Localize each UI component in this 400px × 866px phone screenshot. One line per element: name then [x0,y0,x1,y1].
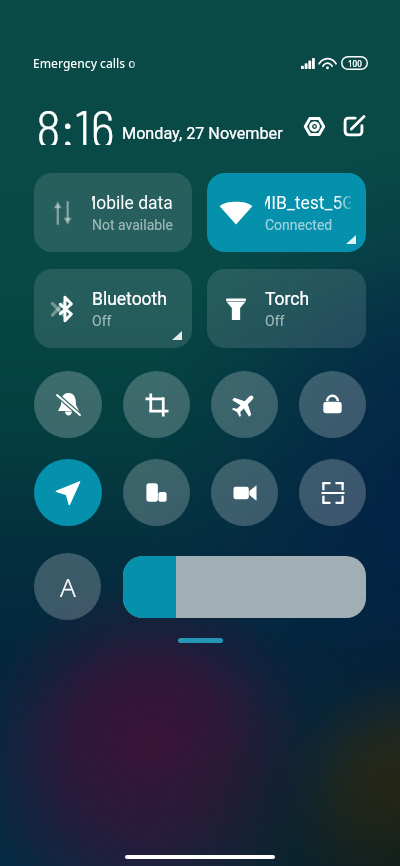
button[interactable]: Screenshot [123,371,190,438]
button[interactable]: Torch [207,269,366,348]
staticText: Connected [265,217,333,233]
button[interactable]: Brightness [123,556,366,618]
button[interactable]: Settings [295,107,333,145]
button[interactable]: Bluetooth [34,269,192,348]
button[interactable]: Floating window [123,459,190,526]
button[interactable]: Scanner [299,459,366,526]
button[interactable]: Mobile data [34,173,192,252]
button[interactable]: Airplane mode [211,371,278,438]
staticText: 8:16 [36,95,115,145]
button[interactable]: Auto brightness [34,553,101,620]
staticText: MIB_test_5G [265,193,351,214]
staticText: Off [265,313,285,329]
staticText: A [60,569,76,604]
staticText: Mobile data [92,193,173,214]
staticText: Emergency calls only [33,55,136,71]
button[interactable]: Location [34,459,102,526]
button[interactable]: Screen recorder [211,459,278,526]
staticText: Off [92,313,112,329]
staticText: 100 [348,58,362,69]
button[interactable]: MIB_test_5G [207,173,366,252]
button[interactable]: Silent mode [34,371,102,438]
staticText: Not available [92,217,173,233]
button[interactable]: Screen lock [299,371,366,438]
staticText: Bluetooth [92,289,167,310]
staticText: Torch [265,289,310,310]
staticText: Monday, 27 November [122,124,283,143]
button[interactable]: Edit [334,107,372,145]
